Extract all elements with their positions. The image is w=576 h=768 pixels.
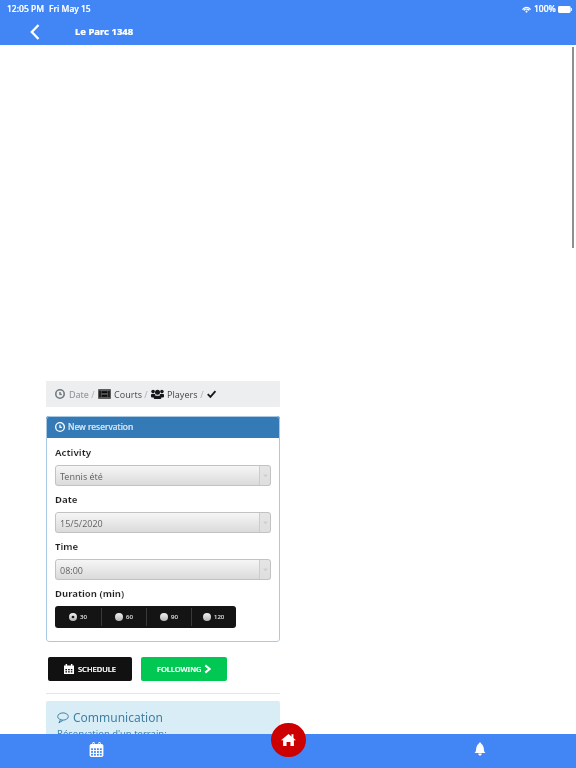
staticText: Date [69, 388, 89, 400]
staticText: Courts [114, 388, 142, 400]
staticText: Time [55, 540, 79, 553]
staticText: / [198, 388, 207, 400]
button[interactable]: 90 [146, 606, 191, 628]
staticText: 100% [534, 3, 556, 15]
button[interactable]: 15/5/2020 [55, 512, 271, 533]
button[interactable]: Calendar [0, 734, 192, 768]
button[interactable]: SCHEDULE [48, 657, 132, 681]
button[interactable]: 08:00 [55, 559, 271, 580]
staticText: 12:05 PM [7, 3, 44, 15]
staticText: Duration (min) [55, 587, 125, 600]
staticText: / [89, 388, 98, 400]
staticText: Communication [73, 709, 163, 725]
staticText: Réservation d'un terrain: [57, 727, 167, 740]
staticText: Tennis été [60, 470, 103, 482]
staticText: Players [167, 388, 198, 400]
staticText: 15/5/2020 [60, 517, 103, 529]
button[interactable]: Home [271, 723, 306, 757]
staticText: Date [55, 493, 78, 506]
button[interactable]: 120 [191, 606, 236, 628]
staticText: SCHEDULE [78, 664, 116, 674]
staticText: / [142, 388, 151, 400]
staticText: 60 [126, 613, 133, 621]
staticText: New reservation [68, 421, 134, 433]
staticText: Activity [55, 446, 92, 459]
staticText: FOLLOWING [157, 664, 202, 674]
button[interactable]: FOLLOWING [141, 657, 227, 681]
staticText: 120 [214, 613, 225, 621]
staticText: Fri May 15 [49, 3, 91, 15]
button[interactable]: 30 [55, 606, 101, 628]
staticText: 08:00 [60, 564, 84, 576]
staticText: 90 [171, 613, 178, 621]
staticText: Le Parc 1348 [75, 25, 134, 38]
button[interactable]: 60 [101, 606, 146, 628]
button[interactable]: Back [24, 21, 46, 43]
button[interactable]: Tennis été [55, 465, 271, 486]
staticText: 30 [80, 613, 87, 621]
button[interactable]: Notifications [384, 734, 576, 768]
